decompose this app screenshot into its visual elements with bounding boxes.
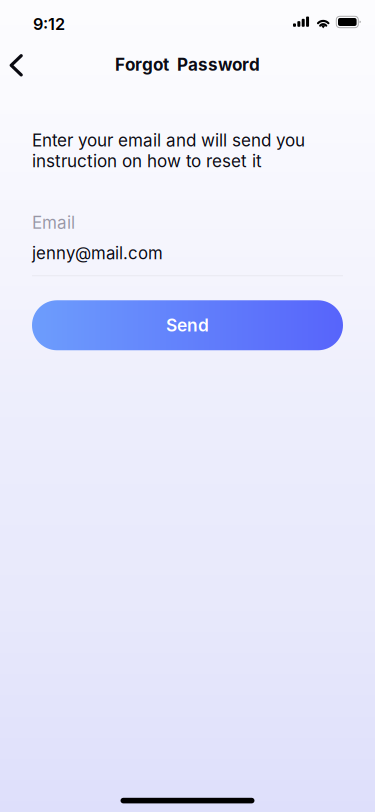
- button[interactable]: Back: [0, 40, 46, 88]
- staticText: instruction on how to reset it: [32, 151, 262, 171]
- staticText: jenny@mail.com: [32, 243, 163, 263]
- staticText: Forgot Password: [115, 54, 260, 75]
- staticText: 9:12: [33, 14, 65, 34]
- button[interactable]: Send: [32, 300, 343, 350]
- staticText: Enter your email and will send you: [32, 130, 305, 151]
- staticText: Send: [166, 315, 209, 336]
- staticText: Email: [32, 212, 75, 233]
